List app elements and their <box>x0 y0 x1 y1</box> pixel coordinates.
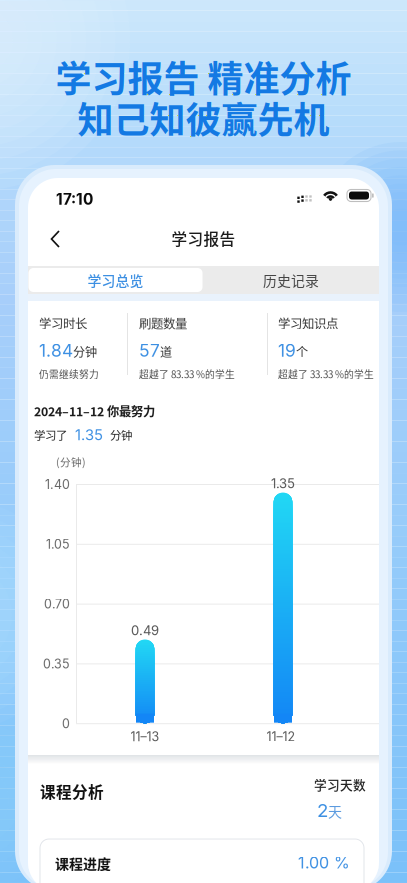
staticText: 1.35 <box>67 426 107 444</box>
staticText: 19 <box>278 340 296 361</box>
staticText: 超越了 83.33 %的学生 <box>139 367 235 381</box>
staticText: 课程进度 <box>55 853 111 873</box>
staticText: 11–13 <box>130 729 159 744</box>
staticText: 0.49 <box>131 622 159 638</box>
staticText: 1.00 % <box>298 853 350 872</box>
staticText: 0.35 <box>43 656 70 671</box>
staticText: (分钟) <box>56 454 86 469</box>
staticText: 1.40 <box>45 477 70 492</box>
staticText: 仍需继续努力 <box>39 367 99 381</box>
staticText: 学习天数 <box>314 775 366 793</box>
staticText: 1.35 <box>271 475 295 491</box>
staticText: 1.84 <box>39 340 73 361</box>
staticText: 0.70 <box>44 597 70 612</box>
staticText: 知己知彼赢先机 <box>77 91 329 144</box>
button[interactable]: 课程进度 <box>40 839 364 883</box>
staticText: 超越了 33.33 %的学生 <box>278 367 374 381</box>
staticText: 天 <box>328 801 342 821</box>
button[interactable]: 返回 <box>33 223 79 255</box>
staticText: 11–12 <box>266 729 295 744</box>
staticText: 学习知识点 <box>278 314 338 332</box>
staticText: 分钟 <box>107 427 132 443</box>
button[interactable]: 学习总览 <box>28 268 202 292</box>
staticText: 分钟 <box>73 343 97 360</box>
staticText: 学习时长 <box>39 314 87 332</box>
staticText: 17:10 <box>56 190 93 209</box>
staticText: 学习报告 <box>171 227 235 250</box>
staticText: 学习总览 <box>87 270 143 290</box>
button[interactable]: 历史记录 <box>204 268 378 292</box>
staticText: 个 <box>296 343 308 360</box>
staticText: 刷题数量 <box>139 314 187 332</box>
staticText: 2024–11–12 你最努力 <box>34 402 155 420</box>
staticText: 道 <box>160 343 172 360</box>
staticText: 0 <box>62 716 70 731</box>
staticText: 课程分析 <box>40 780 104 803</box>
staticText: 2 <box>317 799 328 822</box>
staticText: 学习报告 精准分析 <box>55 50 351 102</box>
staticText: 57 <box>139 340 160 361</box>
staticText: 学习了 <box>34 427 67 443</box>
staticText: 历史记录 <box>263 270 319 290</box>
staticText: 1.05 <box>46 537 70 552</box>
